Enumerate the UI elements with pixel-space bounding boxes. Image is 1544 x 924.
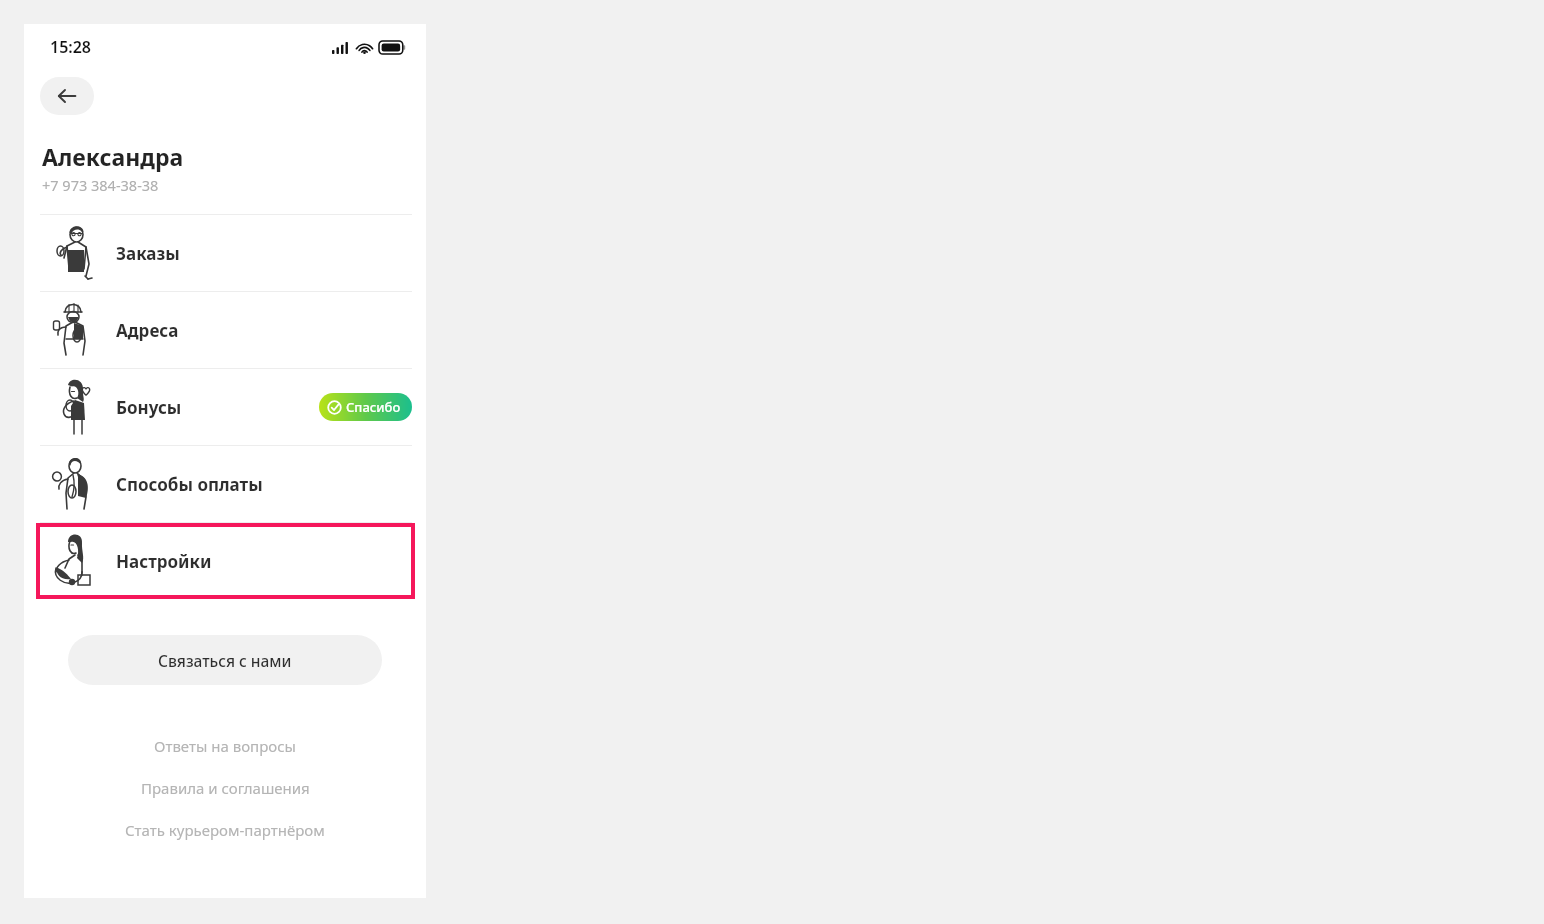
button[interactable]: Способы оплаты (40, 446, 412, 522)
staticText: Способы оплаты (116, 473, 263, 496)
button[interactable]: Бонусы (40, 369, 412, 445)
button[interactable]: Back (40, 77, 94, 115)
staticText: Заказы (116, 242, 180, 265)
button[interactable]: Адреса (40, 292, 412, 368)
button[interactable]: Правила и соглашения (24, 777, 426, 799)
staticText: Настройки (116, 550, 212, 573)
staticText: Стать курьером-партнёром (125, 820, 325, 840)
button[interactable]: Заказы (40, 215, 412, 291)
button[interactable]: Спасибо (319, 393, 412, 421)
staticText: Спасибо (346, 398, 401, 416)
staticText: Адреса (116, 319, 179, 342)
staticText: +7 973 384-38-38 (42, 175, 159, 195)
button[interactable]: Связаться с нами (68, 635, 382, 685)
staticText: Ответы на вопросы (154, 736, 296, 756)
button[interactable]: Ответы на вопросы (24, 735, 426, 757)
button[interactable]: Стать курьером-партнёром (24, 819, 426, 841)
staticText: Связаться с нами (158, 650, 292, 671)
staticText: 15:28 (50, 36, 92, 58)
staticText: Бонусы (116, 396, 182, 419)
staticText: Александра (42, 141, 184, 172)
button[interactable]: Настройки (36, 523, 415, 599)
staticText: Правила и соглашения (141, 778, 310, 798)
